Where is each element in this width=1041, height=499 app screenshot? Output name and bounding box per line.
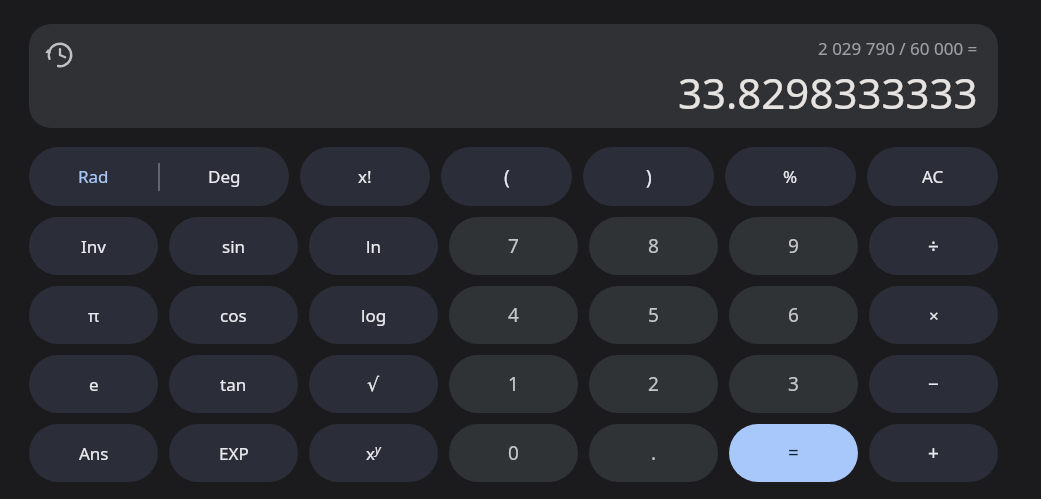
staticText: 6	[788, 302, 799, 328]
staticText: 33.8298333333	[678, 64, 978, 121]
staticText: ln	[366, 235, 381, 258]
staticText: AC	[922, 165, 944, 188]
button[interactable]: cos	[169, 286, 298, 344]
staticText: tan	[220, 373, 247, 396]
button[interactable]: 6	[729, 286, 858, 344]
staticText: 1	[508, 371, 519, 397]
staticText: xy	[366, 441, 381, 465]
staticText: π	[88, 304, 100, 327]
staticText: +	[928, 440, 939, 466]
button[interactable]: π	[29, 286, 158, 344]
button[interactable]: 5	[589, 286, 718, 344]
button[interactable]: Ans	[29, 424, 158, 482]
button[interactable]: =	[729, 424, 858, 482]
button[interactable]: Inv	[29, 217, 158, 275]
button[interactable]: AC	[867, 147, 998, 206]
button[interactable]: +	[869, 424, 998, 482]
button[interactable]: √	[309, 355, 438, 413]
staticText: 7	[508, 233, 519, 259]
staticText: 2 029 790 / 60 000 =	[818, 37, 978, 60]
button[interactable]: (	[441, 147, 572, 206]
staticText: cos	[220, 304, 247, 327]
staticText: Rad	[78, 165, 109, 188]
button[interactable]: 4	[449, 286, 578, 344]
staticText: −	[928, 371, 939, 397]
button[interactable]: ÷	[869, 217, 998, 275]
button[interactable]: 1	[449, 355, 578, 413]
staticText: EXP	[219, 442, 249, 465]
button[interactable]: xy	[309, 424, 438, 482]
staticText: x!	[358, 165, 372, 188]
staticText: 5	[648, 302, 659, 328]
button[interactable]: −	[869, 355, 998, 413]
button[interactable]: )	[583, 147, 714, 206]
staticText: 2	[648, 371, 659, 397]
staticText: %	[783, 165, 798, 188]
staticText: log	[361, 304, 387, 327]
staticText: 9	[788, 233, 799, 259]
button[interactable]: ×	[869, 286, 998, 344]
button[interactable]: 8	[589, 217, 718, 275]
button[interactable]: e	[29, 355, 158, 413]
button[interactable]: 2	[589, 355, 718, 413]
staticText: Ans	[79, 442, 109, 465]
button[interactable]: 9	[729, 217, 858, 275]
staticText: =	[788, 440, 799, 466]
staticText: e	[89, 373, 99, 396]
staticText: 0	[508, 440, 519, 466]
staticText: ×	[929, 304, 939, 327]
button[interactable]: %	[725, 147, 856, 206]
staticText: √	[367, 373, 380, 395]
staticText: 3	[788, 371, 799, 397]
staticText: )	[646, 164, 652, 190]
button[interactable]: .	[589, 424, 718, 482]
button[interactable]: 7	[449, 217, 578, 275]
staticText: ÷	[928, 233, 939, 259]
button[interactable]: Rad	[29, 147, 289, 206]
staticText: sin	[222, 235, 246, 258]
button[interactable]: ln	[309, 217, 438, 275]
button[interactable]: tan	[169, 355, 298, 413]
staticText: 8	[648, 233, 659, 259]
staticText: Deg	[208, 165, 241, 188]
button[interactable]: 3	[729, 355, 858, 413]
staticText: .	[651, 440, 657, 466]
button[interactable]: EXP	[169, 424, 298, 482]
button[interactable]: 0	[449, 424, 578, 482]
button[interactable]: sin	[169, 217, 298, 275]
staticText: 4	[508, 302, 519, 328]
staticText: Inv	[81, 235, 106, 258]
staticText: (	[504, 164, 510, 190]
button[interactable]: log	[309, 286, 438, 344]
button[interactable]: History	[44, 39, 76, 71]
button[interactable]: x!	[300, 147, 430, 206]
